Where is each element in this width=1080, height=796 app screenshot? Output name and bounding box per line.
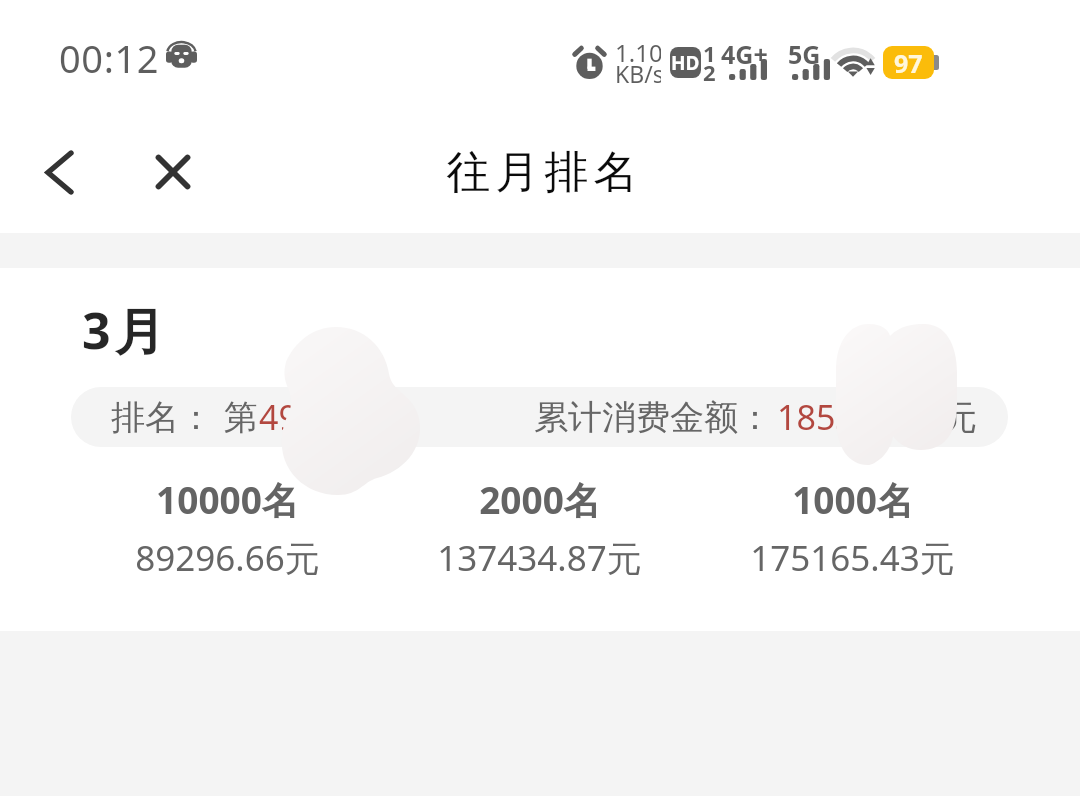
staticText: 2000名 xyxy=(479,474,601,525)
button[interactable]: 1000名 xyxy=(696,474,1009,582)
staticText: 1000名 xyxy=(792,474,914,525)
staticText: 97 xyxy=(894,46,923,79)
staticText: KB/s xyxy=(615,58,661,89)
staticText: 元 xyxy=(943,396,977,439)
staticText: HD xyxy=(671,50,700,76)
staticText: 5G xyxy=(788,37,821,71)
staticText: 89296.66元 xyxy=(135,534,320,582)
staticText: 137434.87元 xyxy=(437,534,642,582)
staticText: 3月 xyxy=(82,296,169,364)
staticText: 4G+ xyxy=(721,37,768,71)
staticText: 1.10 xyxy=(615,36,661,69)
button[interactable]: 排名： xyxy=(71,387,1008,447)
staticText: 49 xyxy=(259,394,298,440)
button[interactable]: Close xyxy=(125,124,221,220)
button[interactable]: Back xyxy=(11,124,107,220)
button[interactable]: 10000名 xyxy=(71,474,383,582)
staticText: 175165.43元 xyxy=(750,534,955,582)
staticText: 1 xyxy=(703,38,716,68)
staticText: 第 xyxy=(224,396,258,439)
staticText: 1853 xyxy=(777,394,855,440)
staticText: 累计消费金额： xyxy=(534,396,772,439)
staticText: 10000名 xyxy=(156,474,299,525)
staticText: 2 xyxy=(703,57,716,87)
staticText: 往月排名 xyxy=(444,145,640,200)
staticText: 排名： xyxy=(111,396,213,439)
button[interactable]: 2000名 xyxy=(383,474,696,582)
staticText: 00:12 xyxy=(59,32,160,82)
